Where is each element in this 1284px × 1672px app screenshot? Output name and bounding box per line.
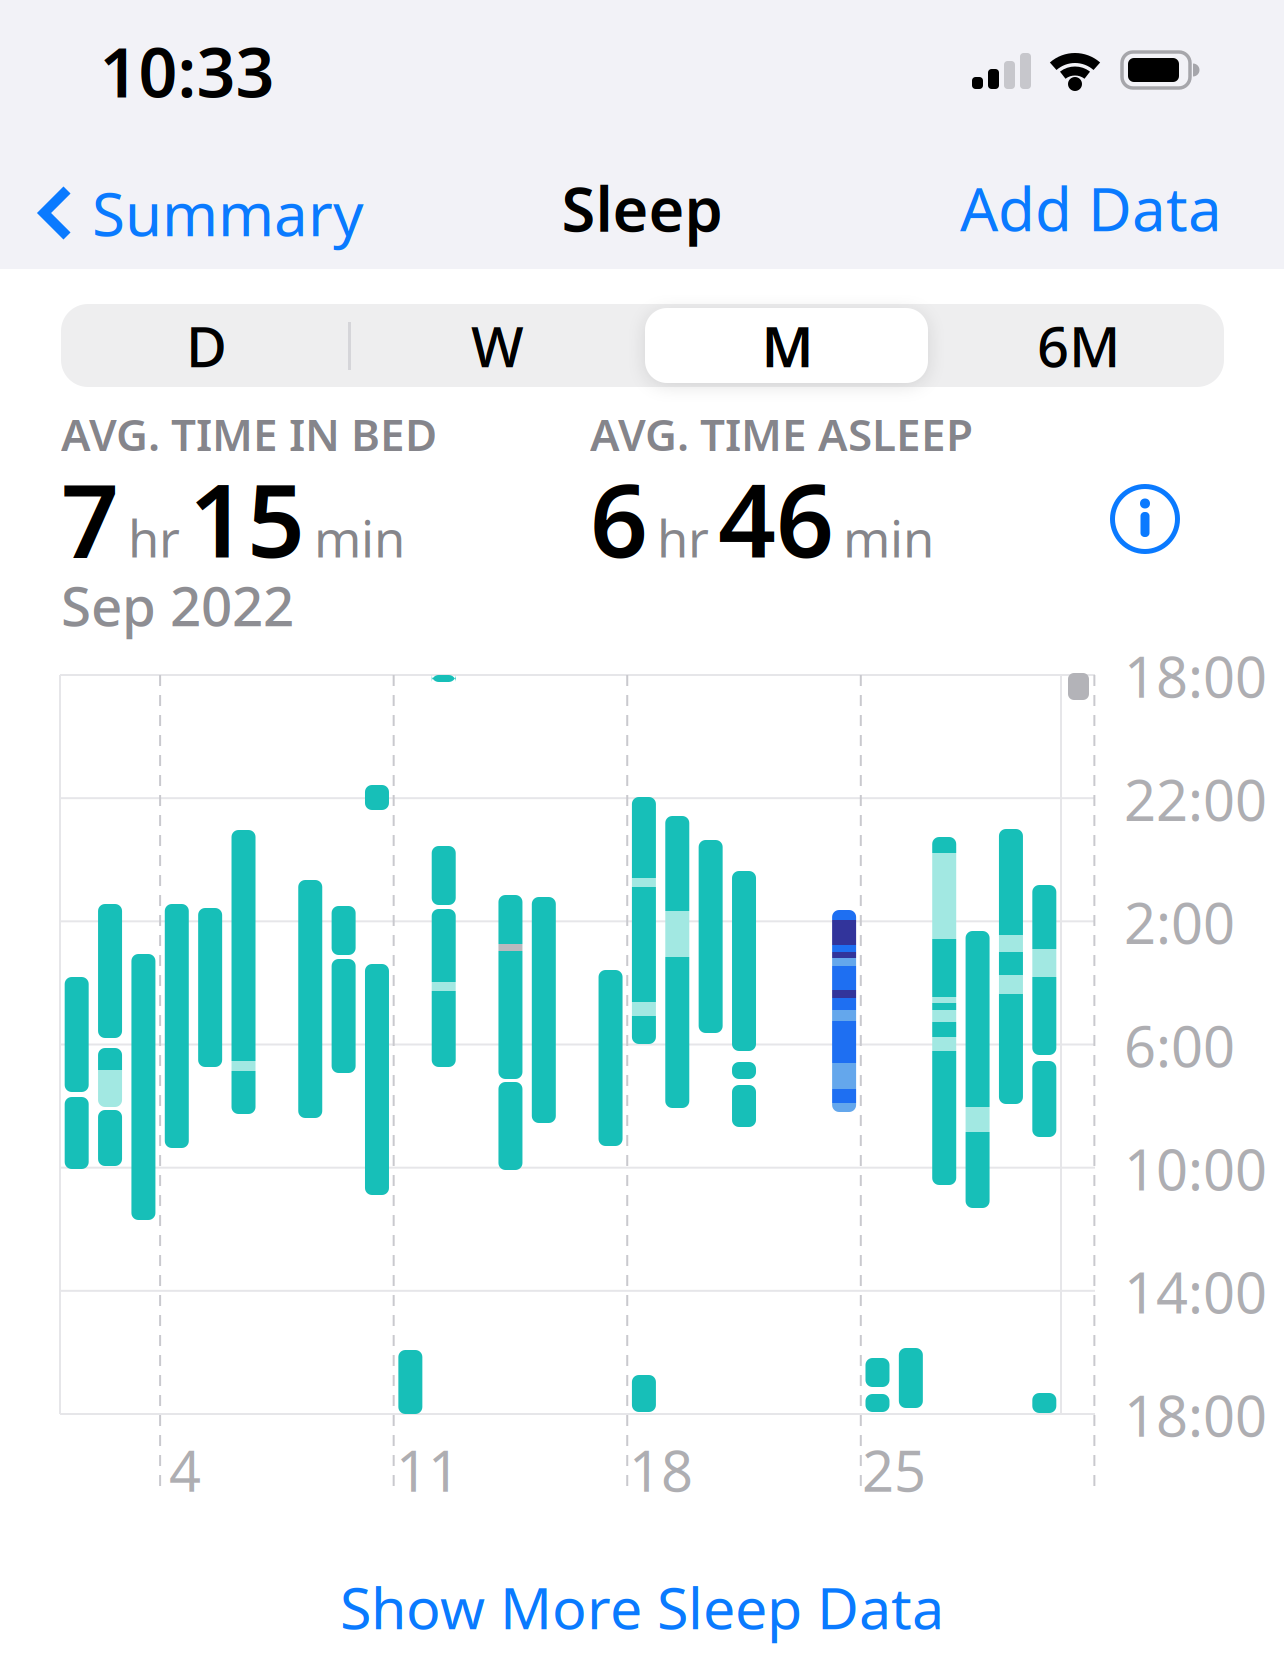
- staticText: 18:00: [1124, 1378, 1267, 1452]
- staticText: 10:33: [99, 26, 274, 116]
- staticText: Sep 2022: [61, 569, 294, 641]
- staticText: 10:00: [1124, 1131, 1267, 1206]
- staticText: Show More Sleep Data: [340, 1569, 944, 1645]
- staticText: 6: [590, 451, 648, 586]
- staticText: 46: [718, 451, 834, 586]
- staticText: 14:00: [1124, 1255, 1267, 1329]
- staticText: min: [314, 504, 405, 572]
- staticText: 4: [169, 1433, 201, 1507]
- staticText: 6M: [1037, 308, 1120, 383]
- staticText: hr: [128, 504, 180, 572]
- staticText: 25: [862, 1433, 926, 1507]
- staticText: D: [186, 308, 227, 383]
- staticText: Summary: [92, 173, 364, 253]
- button[interactable]: Summary: [40, 181, 364, 245]
- staticText: 18:00: [1124, 639, 1267, 713]
- staticText: Add Data: [960, 168, 1222, 248]
- button[interactable]: M: [642, 304, 933, 387]
- staticText: 15: [189, 451, 305, 586]
- button[interactable]: 6M: [933, 304, 1224, 387]
- staticText: Sleep: [561, 167, 722, 249]
- button[interactable]: W: [352, 304, 643, 387]
- staticText: W: [471, 308, 524, 383]
- staticText: 6:00: [1124, 1008, 1235, 1083]
- staticText: hr: [657, 504, 709, 572]
- staticText: 2:00: [1124, 885, 1235, 960]
- button[interactable]: Show More Sleep Data: [340, 1569, 944, 1645]
- staticText: M: [761, 308, 813, 383]
- staticText: min: [843, 504, 934, 572]
- staticText: 11: [396, 1433, 460, 1507]
- button[interactable]: D: [61, 304, 352, 387]
- button[interactable]: Add Data: [922, 168, 1222, 248]
- staticText: 22:00: [1124, 762, 1267, 836]
- staticText: AVG. TIME ASLEEP: [590, 405, 973, 463]
- staticText: 7: [61, 451, 119, 586]
- staticText: AVG. TIME IN BED: [61, 405, 437, 463]
- button[interactable]: [1110, 484, 1180, 554]
- staticText: 18: [629, 1433, 693, 1507]
